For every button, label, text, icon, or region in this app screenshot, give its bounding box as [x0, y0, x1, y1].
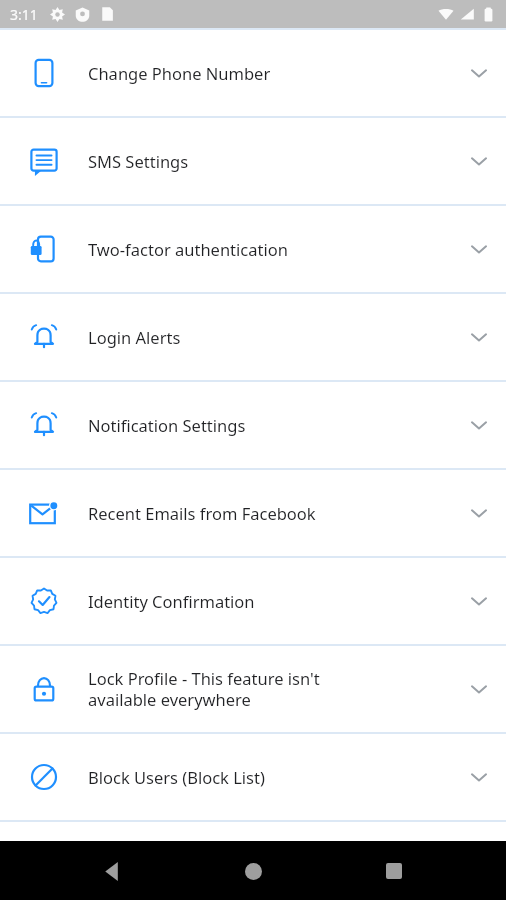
staticText: Login Alerts [88, 326, 460, 348]
other: Email [29, 498, 59, 528]
button[interactable]: Identity Confirmation [0, 558, 506, 644]
other: Lock Profile [29, 674, 59, 704]
button[interactable]: Home [224, 842, 282, 900]
staticText: Identity Confirmation [88, 590, 460, 612]
other: Phone [29, 58, 59, 88]
staticText: Two-factor authentication [88, 238, 460, 260]
button[interactable]: Two-factor authentication [0, 206, 506, 292]
other: SMS [29, 146, 59, 176]
button[interactable]: Phone [0, 30, 506, 116]
staticText: Notification Settings [88, 414, 460, 436]
staticText: Lock Profile - This feature isn't availa… [88, 667, 460, 711]
staticText: Change Phone Number [88, 62, 460, 84]
other: Alerts [29, 410, 59, 440]
button[interactable]: Alerts [0, 294, 506, 380]
button[interactable]: Block Users [0, 734, 506, 820]
staticText: SMS Settings [88, 150, 460, 172]
button[interactable]: SMS [0, 118, 506, 204]
button[interactable]: Alerts [0, 382, 506, 468]
staticText: Block Users (Block List) [88, 766, 460, 788]
other: Alerts [29, 322, 59, 352]
other: Identity Confirmation [29, 586, 59, 616]
other: Block Users [29, 762, 59, 792]
button[interactable]: Email [0, 470, 506, 556]
other: Two-factor authentication [29, 234, 59, 264]
button[interactable]: Back [83, 842, 141, 900]
button[interactable]: Lock Profile [0, 646, 506, 732]
button[interactable]: Recent apps [365, 842, 423, 900]
staticText: 3:11 [10, 5, 38, 24]
staticText: Recent Emails from Facebook [88, 502, 460, 524]
